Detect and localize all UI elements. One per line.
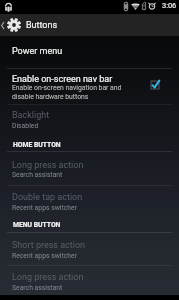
staticText: Long press action <box>12 160 84 171</box>
button[interactable] <box>0 185 179 229</box>
staticText: Search assistant <box>12 284 63 292</box>
button[interactable] <box>0 151 179 185</box>
button[interactable] <box>0 68 179 104</box>
staticText: Disabled <box>12 122 39 130</box>
staticText: Power menu <box>12 46 63 57</box>
staticText: Backlight <box>12 110 50 121</box>
button[interactable] <box>0 104 179 148</box>
staticText: Recent apps switcher <box>12 204 77 212</box>
staticText: disable hardware buttons <box>12 93 89 101</box>
button[interactable]: Navigate up <box>0 14 58 36</box>
button[interactable] <box>0 232 179 265</box>
staticText: Search assistant <box>12 171 63 179</box>
staticText: MENU BUTTON <box>13 221 61 229</box>
staticText: Short press action <box>12 240 86 251</box>
staticText: HOME BUTTON <box>13 141 61 149</box>
staticText: Long press action <box>12 272 84 283</box>
staticText: Buttons <box>26 20 58 31</box>
button[interactable] <box>0 265 179 295</box>
staticText: Recent apps switcher <box>12 252 77 260</box>
staticText: Enable on-screen nav bar <box>12 74 113 85</box>
staticText: 3:06 <box>162 1 177 10</box>
staticText: Enable on-screen navigation bar and <box>12 84 122 92</box>
staticText: Double tap action <box>12 192 83 203</box>
